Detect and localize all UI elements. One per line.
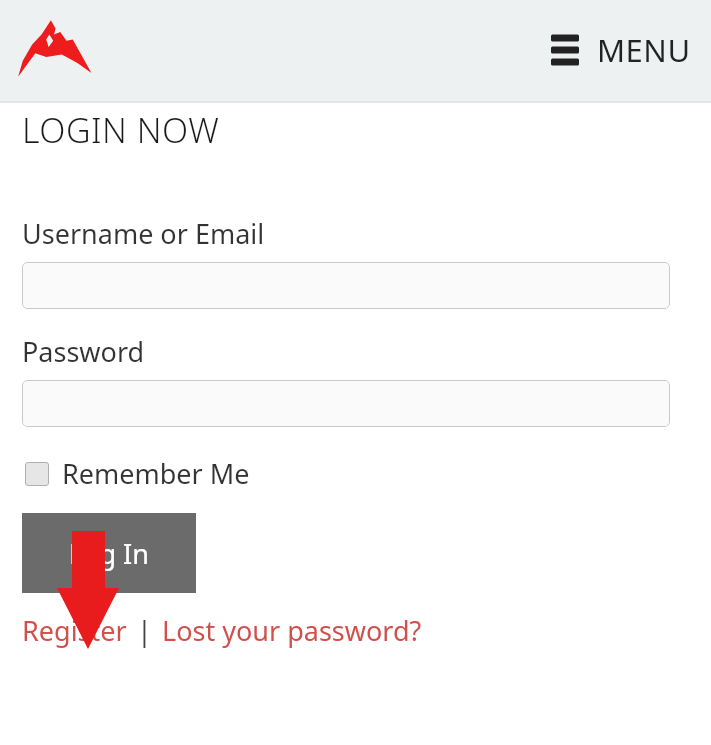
- button[interactable]: Log In: [22, 513, 196, 593]
- button[interactable]: [22, 380, 670, 427]
- staticText: Username or Email: [22, 215, 265, 252]
- staticText: Log In: [69, 535, 149, 572]
- button[interactable]: MENU: [545, 23, 697, 77]
- staticText: LOGIN NOW: [22, 107, 220, 153]
- button[interactable]: Remember Me: [22, 455, 250, 492]
- staticText: Register: [22, 612, 127, 649]
- staticText: |: [137, 612, 152, 649]
- button[interactable]: Register: [22, 612, 127, 649]
- button[interactable]: Lost your password?: [162, 612, 422, 649]
- staticText: Remember Me: [62, 455, 250, 492]
- staticText: Lost your password?: [162, 612, 422, 649]
- staticText: MENU: [597, 29, 691, 71]
- staticText: Password: [22, 333, 145, 370]
- button[interactable]: Home: [15, 16, 93, 78]
- button[interactable]: [22, 262, 670, 309]
